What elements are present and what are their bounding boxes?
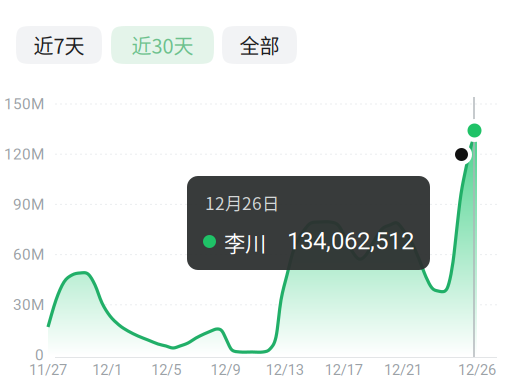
staticText: 李川 xyxy=(224,227,266,258)
staticText: 近7天 xyxy=(33,30,84,59)
staticText: 12/5 xyxy=(151,361,181,378)
staticText: 12/21 xyxy=(384,361,422,378)
staticText: 12/26 xyxy=(458,361,496,378)
staticText: 11/27 xyxy=(29,361,67,378)
staticText: 90M xyxy=(13,195,44,213)
staticText: 12/9 xyxy=(210,361,240,378)
staticText: 150M xyxy=(4,95,44,113)
staticText: 12/1 xyxy=(92,361,122,378)
staticText: 12/13 xyxy=(266,361,304,378)
staticText: 近30天 xyxy=(131,30,193,59)
button[interactable]: 近7天 xyxy=(16,26,102,64)
staticText: 30M xyxy=(13,296,44,314)
staticText: 0 xyxy=(35,346,44,364)
staticText: 120M xyxy=(4,145,44,163)
staticText: 134,062,512 xyxy=(287,227,414,255)
staticText: 12月26日 xyxy=(205,190,279,215)
staticText: 12/17 xyxy=(325,361,363,378)
staticText: 全部 xyxy=(239,30,279,59)
button[interactable]: 全部 xyxy=(222,26,297,64)
button[interactable]: 近30天 xyxy=(111,26,214,64)
staticText: 60M xyxy=(13,246,44,264)
